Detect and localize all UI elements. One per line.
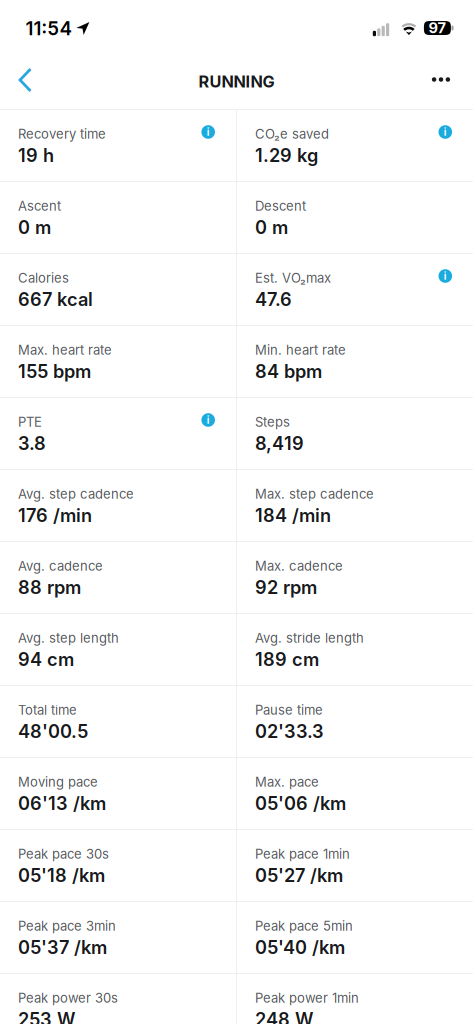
- staticText: RUNNING: [198, 72, 274, 91]
- staticText: i: [207, 126, 210, 138]
- staticText: 189 cm: [255, 648, 319, 670]
- button[interactable]: Total time: [0, 686, 236, 758]
- button[interactable]: Peak power 1min: [237, 974, 473, 1024]
- staticText: 0 m: [255, 216, 288, 238]
- staticText: 667 kcal: [18, 288, 93, 310]
- staticText: Max. cadence: [255, 558, 343, 574]
- staticText: Peak pace 5min: [255, 918, 353, 934]
- staticText: Avg. step length: [18, 630, 119, 646]
- button[interactable]: Ascent: [0, 182, 236, 254]
- staticText: 05'18 /km: [18, 864, 105, 886]
- staticText: Calories: [18, 270, 69, 286]
- staticText: Pause time: [255, 702, 323, 718]
- staticText: 84 bpm: [255, 360, 322, 382]
- staticText: 94 cm: [18, 648, 74, 670]
- staticText: 184 /min: [255, 504, 331, 526]
- staticText: Descent: [255, 198, 306, 214]
- button[interactable]: Peak power 30s: [0, 974, 236, 1024]
- staticText: 19 h: [18, 144, 54, 166]
- staticText: i: [444, 270, 447, 282]
- staticText: Peak power 1min: [255, 990, 359, 1006]
- staticText: Max. step cadence: [255, 486, 374, 502]
- staticText: Est. VO₂max: [255, 270, 331, 286]
- staticText: i: [444, 126, 447, 138]
- button[interactable]: Peak pace 5min: [237, 902, 473, 974]
- staticText: Min. heart rate: [255, 342, 346, 358]
- button[interactable]: Max. step cadence: [237, 470, 473, 542]
- staticText: Peak power 30s: [18, 990, 118, 1006]
- button[interactable]: Back: [4, 58, 48, 102]
- staticText: 05'40 /km: [255, 936, 345, 958]
- staticText: Avg. cadence: [18, 558, 103, 574]
- staticText: i: [207, 414, 210, 426]
- staticText: 05'06 /km: [255, 792, 346, 814]
- button[interactable]: Avg. step length: [0, 614, 236, 686]
- button[interactable]: Calories: [0, 254, 236, 326]
- button[interactable]: Avg. cadence: [0, 542, 236, 614]
- button[interactable]: Est. VO₂max: [237, 254, 473, 326]
- staticText: Peak pace 3min: [18, 918, 116, 934]
- button[interactable]: Pause time: [237, 686, 473, 758]
- button[interactable]: Peak pace 30s: [0, 830, 236, 902]
- staticText: 02'33.3: [255, 720, 324, 742]
- button[interactable]: Max. cadence: [237, 542, 473, 614]
- staticText: 248 W: [255, 1008, 313, 1024]
- button[interactable]: Max. pace: [237, 758, 473, 830]
- button[interactable]: CO₂e saved: [237, 110, 473, 182]
- staticText: Avg. step cadence: [18, 486, 134, 502]
- button[interactable]: Peak pace 3min: [0, 902, 236, 974]
- staticText: 47.6: [255, 288, 292, 310]
- staticText: Ascent: [18, 198, 61, 214]
- staticText: 88 rpm: [18, 576, 81, 598]
- staticText: 3.8: [18, 432, 46, 454]
- staticText: Moving pace: [18, 774, 98, 790]
- button[interactable]: Min. heart rate: [237, 326, 473, 398]
- button[interactable]: Avg. step cadence: [0, 470, 236, 542]
- staticText: 05'27 /km: [255, 864, 343, 886]
- button[interactable]: Max. heart rate: [0, 326, 236, 398]
- staticText: 92 rpm: [255, 576, 317, 598]
- button[interactable]: Peak pace 1min: [237, 830, 473, 902]
- staticText: 06'13 /km: [18, 792, 106, 814]
- staticText: Total time: [18, 702, 77, 718]
- staticText: 05'37 /km: [18, 936, 107, 958]
- button[interactable]: Moving pace: [0, 758, 236, 830]
- staticText: PTE: [18, 414, 42, 430]
- button[interactable]: Steps: [237, 398, 473, 470]
- staticText: Max. pace: [255, 774, 319, 790]
- staticText: 155 bpm: [18, 360, 91, 382]
- staticText: CO₂e saved: [255, 126, 329, 142]
- staticText: 11:54: [26, 17, 73, 40]
- staticText: 8,419: [255, 432, 304, 454]
- staticText: 0 m: [18, 216, 51, 238]
- staticText: Peak pace 1min: [255, 846, 350, 862]
- button[interactable]: PTE: [0, 398, 236, 470]
- button[interactable]: Avg. stride length: [237, 614, 473, 686]
- staticText: Peak pace 30s: [18, 846, 109, 862]
- staticText: Steps: [255, 414, 290, 430]
- staticText: 253 W: [18, 1008, 75, 1024]
- staticText: Recovery time: [18, 126, 106, 142]
- staticText: 48'00.5: [18, 720, 88, 742]
- staticText: 176 /min: [18, 504, 92, 526]
- staticText: 1.29 kg: [255, 144, 318, 166]
- button[interactable]: Descent: [237, 182, 473, 254]
- button[interactable]: More options: [419, 57, 463, 101]
- staticText: Avg. stride length: [255, 630, 364, 646]
- staticText: 97: [428, 19, 446, 37]
- staticText: Max. heart rate: [18, 342, 112, 358]
- button[interactable]: Recovery time: [0, 110, 236, 182]
